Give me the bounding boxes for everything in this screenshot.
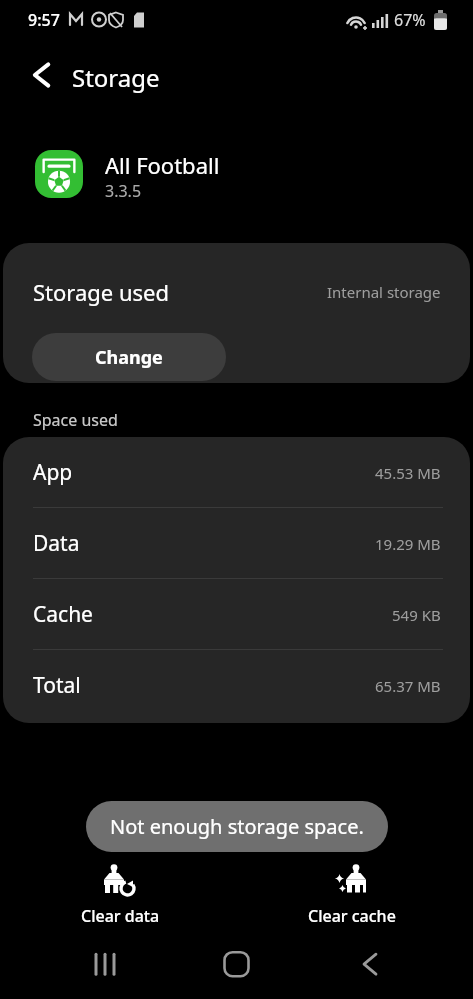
staticText: Storage [72,61,160,94]
staticText: 549 KB [392,605,441,625]
staticText: Space used [33,409,118,431]
staticText: Data [33,529,80,558]
staticText: All Football [105,150,220,180]
staticText: 19.29 MB [375,534,441,554]
staticText: Cache [33,600,93,629]
staticText: 65.37 MB [375,676,441,696]
staticText: Not enough storage space. [110,813,364,840]
staticText: 45.53 MB [375,463,441,483]
staticText: 9:57 [28,9,60,31]
staticText: Internal storage [327,282,441,302]
staticText: Storage used [33,277,170,307]
staticText: Total [33,671,81,700]
staticText: Clear data [81,905,160,927]
staticText: Change [95,345,163,370]
staticText: App [33,458,73,487]
staticText: Clear cache [308,905,396,927]
staticText: 3.3.5 [105,180,142,202]
staticText: 67% [394,9,426,31]
